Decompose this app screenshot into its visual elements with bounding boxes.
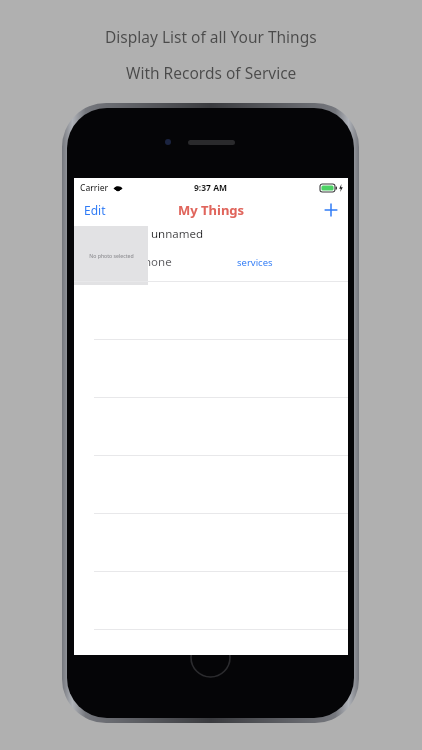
staticText: My Things — [178, 201, 245, 219]
staticText: Carrier — [80, 182, 109, 194]
staticText: With Records of Service — [126, 62, 297, 83]
staticText: No photo selected — [89, 252, 134, 259]
staticText: 9:37 AM — [194, 182, 228, 194]
button[interactable]: unnamed — [74, 222, 348, 281]
staticText: unnamed — [151, 226, 204, 242]
staticText: Display List of all Your Things — [105, 26, 317, 47]
button[interactable] — [74, 282, 348, 339]
button[interactable]: Edit — [74, 199, 116, 221]
button[interactable]: Add thing — [314, 200, 348, 220]
button[interactable]: services — [237, 256, 273, 269]
staticText: none — [144, 254, 172, 270]
staticText: services — [237, 256, 273, 269]
staticText: Edit — [84, 202, 106, 218]
button[interactable]: Select photo — [74, 226, 148, 285]
